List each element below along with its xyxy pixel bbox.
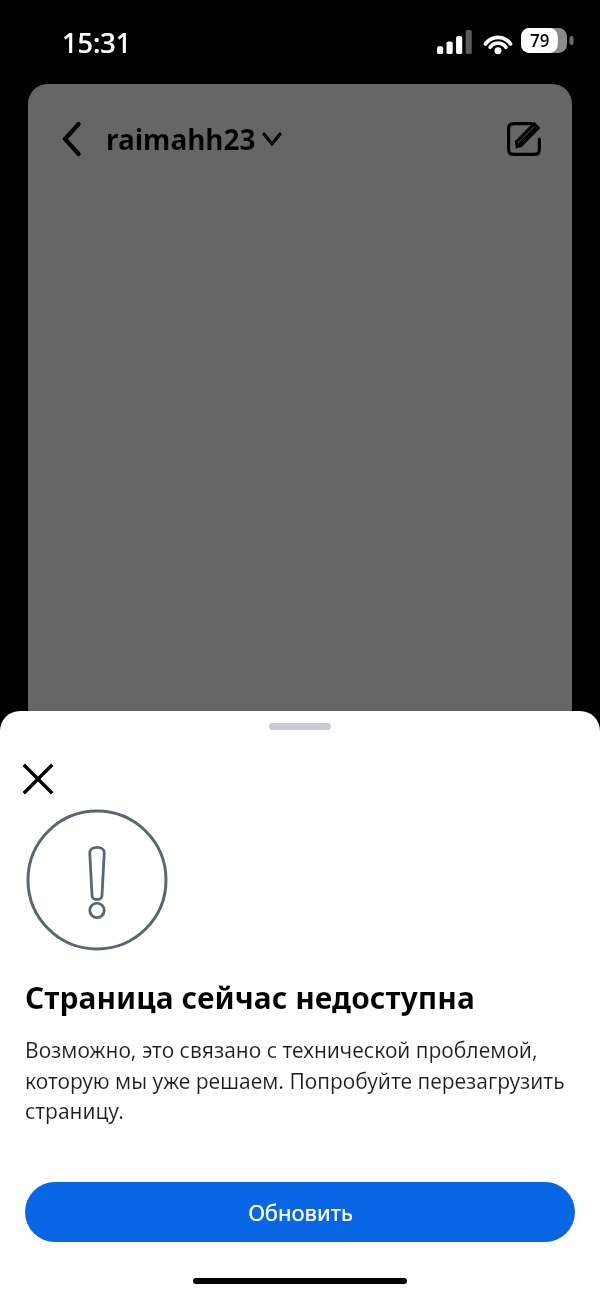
staticText: Возможно, это связано с технической проб…	[25, 1036, 574, 1125]
staticText: Обновить	[248, 1197, 353, 1227]
button[interactable]: raimahh23	[106, 120, 280, 158]
staticText: 15:31	[62, 24, 132, 61]
button[interactable]: Back	[54, 120, 92, 158]
staticText: raimahh23	[106, 120, 256, 158]
button[interactable]: Edit	[502, 117, 546, 161]
button[interactable]: Обновить	[25, 1182, 575, 1242]
staticText: Страница сейчас недоступна	[25, 977, 475, 1018]
button[interactable]: Close	[16, 757, 60, 801]
staticText: 79	[530, 29, 550, 52]
